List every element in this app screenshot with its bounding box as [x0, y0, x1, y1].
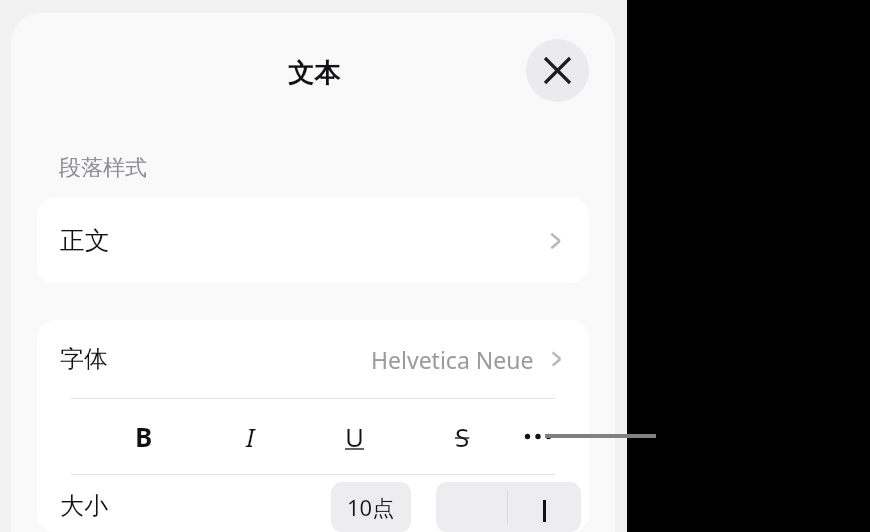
staticText: 文本: [288, 57, 340, 90]
staticText: 正文: [60, 225, 110, 256]
button[interactable]: Strikethrough: [429, 399, 495, 474]
button[interactable]: Italic: [217, 399, 283, 474]
button[interactable]: Increase size: [508, 482, 581, 532]
button[interactable]: More: [505, 399, 571, 474]
button[interactable]: Bold: [111, 399, 177, 474]
staticText: 10点: [347, 492, 395, 522]
staticText: Helvetica Neue: [371, 344, 534, 375]
staticText: S: [455, 419, 470, 454]
staticText: 大小: [60, 491, 108, 521]
staticText: B: [135, 419, 153, 454]
button[interactable]: 10点: [331, 482, 411, 532]
staticText: 段落样式: [59, 154, 147, 182]
staticText: 字体: [60, 344, 108, 374]
staticText: I: [246, 419, 255, 454]
button[interactable]: Underline: [322, 399, 388, 474]
button[interactable]: 字体: [37, 320, 589, 398]
button[interactable]: Close: [526, 39, 589, 102]
staticText: U: [345, 419, 365, 454]
button[interactable]: 正文: [37, 198, 589, 283]
